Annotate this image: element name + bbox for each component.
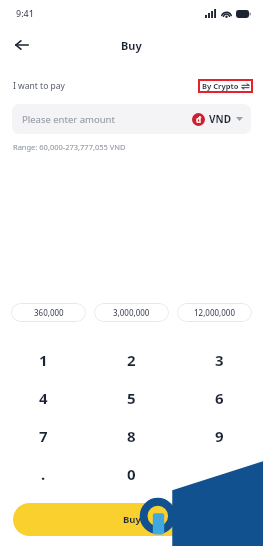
staticText: 4 (39, 388, 48, 408)
staticText: Range: 60,000-273,777,055 VND (13, 142, 126, 152)
button[interactable]: Please enter amount (12, 104, 251, 134)
button[interactable]: By Crypto (202, 81, 249, 91)
button[interactable]: 3,000,000 (94, 303, 169, 322)
staticText: 0 (127, 464, 136, 484)
button[interactable]: 4 (0, 379, 87, 417)
staticText: 2 (127, 350, 136, 370)
staticText: I want to pay (13, 80, 65, 92)
staticText: Please enter amount (22, 113, 115, 126)
button[interactable]: 5 (87, 379, 175, 417)
staticText: VND (209, 112, 231, 126)
staticText: 9 (215, 426, 224, 446)
button[interactable]: 3 (175, 341, 263, 379)
staticText: 3,000,000 (113, 307, 150, 318)
staticText: . (41, 464, 46, 484)
button[interactable]: 2 (87, 341, 175, 379)
staticText: 360,000 (34, 307, 64, 318)
button[interactable] (175, 455, 263, 493)
button[interactable]: Buy (13, 503, 250, 536)
button[interactable]: 9 (175, 417, 263, 455)
button[interactable]: 360,000 (11, 303, 86, 322)
staticText: 8 (127, 426, 136, 446)
staticText: 9:41 (16, 7, 34, 19)
button[interactable]: 12,000,000 (177, 303, 252, 322)
staticText: By Crypto (202, 81, 239, 91)
staticText: 7 (39, 426, 48, 446)
staticText: Buy (123, 513, 141, 526)
staticText: Buy (121, 38, 142, 53)
button[interactable]: 0 (87, 455, 175, 493)
button[interactable]: 7 (0, 417, 87, 455)
button[interactable]: Back (8, 31, 36, 59)
button[interactable]: 6 (175, 379, 263, 417)
staticText: 6 (215, 388, 224, 408)
staticText: 12,000,000 (194, 307, 235, 318)
button[interactable]: . (0, 455, 87, 493)
button[interactable]: 1 (0, 341, 87, 379)
button[interactable]: 8 (87, 417, 175, 455)
button[interactable]: đ (192, 112, 243, 126)
staticText: 5 (127, 388, 136, 408)
staticText: 3 (215, 350, 224, 370)
staticText: 1 (39, 350, 48, 370)
staticText: đ (196, 114, 202, 125)
